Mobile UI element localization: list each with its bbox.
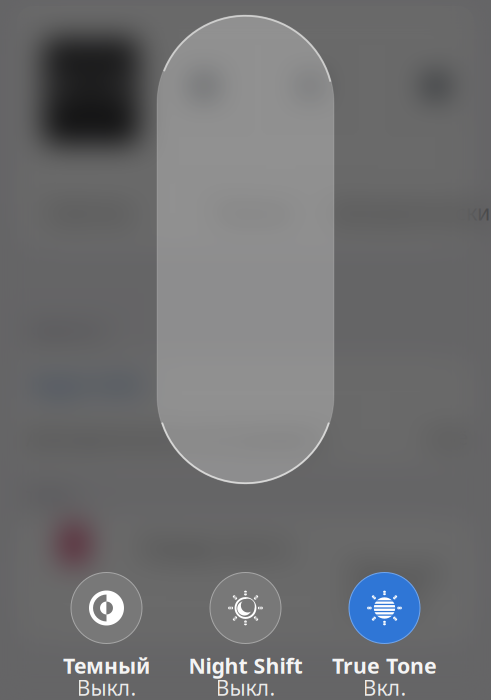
staticText: Выкл. [76, 673, 136, 700]
staticText: Жирный шрифт [350, 558, 437, 615]
staticText: True Tone [332, 651, 437, 680]
staticText: Темный [63, 651, 150, 680]
staticText: Выкл. [215, 673, 275, 700]
button[interactable]: True Tone [315, 572, 454, 697]
staticText: Автоматически настраивает [26, 424, 322, 452]
staticText: Night Shift [188, 651, 302, 680]
staticText: Автоматически [330, 198, 490, 226]
staticText: Вкл. [362, 673, 406, 700]
staticText: Светлое Темное [46, 198, 292, 226]
button[interactable]: Темный [37, 572, 176, 697]
button[interactable]: Night Shift [176, 572, 315, 697]
